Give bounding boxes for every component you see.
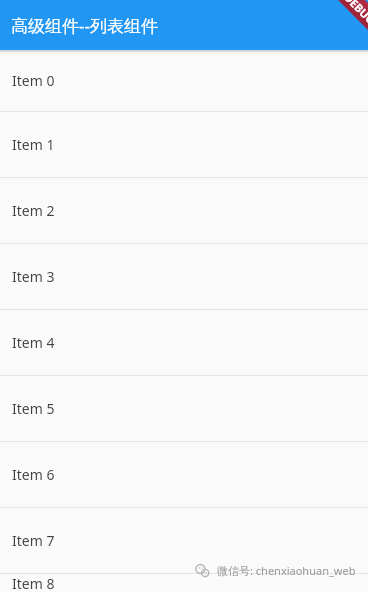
staticText: 高级组件--列表组件 xyxy=(11,14,158,37)
staticText: Item 0 xyxy=(12,71,55,90)
button[interactable]: Item 1 xyxy=(0,112,368,178)
button[interactable]: Item 8 xyxy=(0,574,368,589)
staticText: Item 7 xyxy=(12,531,55,550)
staticText: Item 4 xyxy=(12,333,55,352)
staticText: DEBUG xyxy=(341,0,368,27)
staticText: 微信号: chenxiaohuan_web xyxy=(217,563,356,578)
staticText: Item 6 xyxy=(12,465,55,484)
staticText: Item 5 xyxy=(12,399,55,418)
button[interactable]: Item 0 xyxy=(0,53,368,112)
button[interactable]: Item 5 xyxy=(0,376,368,442)
button[interactable]: Item 7 xyxy=(0,508,368,574)
staticText: Item 2 xyxy=(12,201,55,220)
button[interactable]: Item 2 xyxy=(0,178,368,244)
button[interactable]: Item 6 xyxy=(0,442,368,508)
button[interactable]: Item 3 xyxy=(0,244,368,310)
staticText: Item 8 xyxy=(12,574,55,589)
button[interactable]: Item 4 xyxy=(0,310,368,376)
staticText: Item 1 xyxy=(12,135,55,154)
other: Debug banner xyxy=(304,0,368,64)
staticText: Item 3 xyxy=(12,267,55,286)
